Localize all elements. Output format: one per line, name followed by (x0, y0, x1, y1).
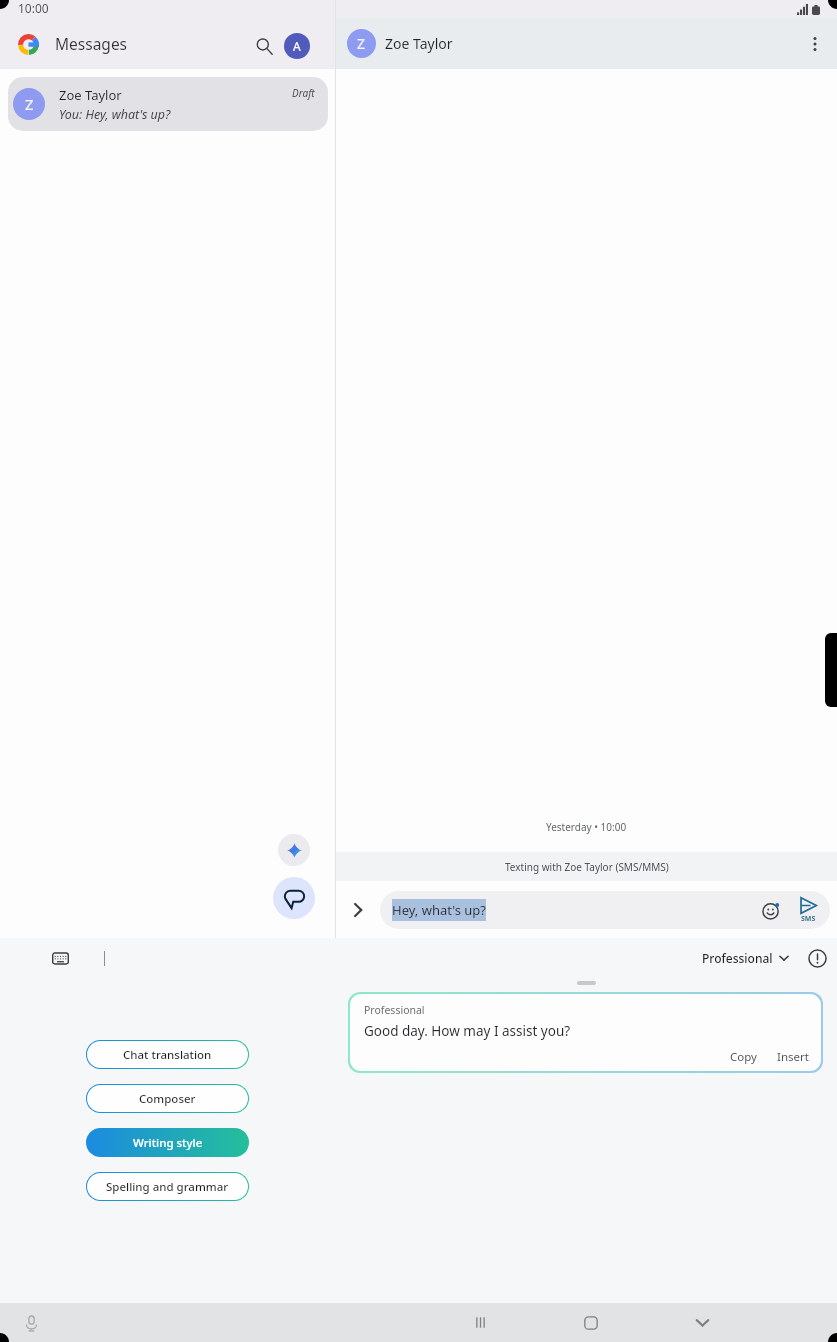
button[interactable]: Account (284, 33, 310, 59)
button[interactable]: Recent apps (460, 1303, 500, 1342)
staticText: Z (25, 94, 34, 114)
staticText: Writing style (133, 1135, 203, 1151)
button[interactable]: Copy (725, 1047, 762, 1067)
button[interactable]: Hey, what's up? (392, 899, 757, 921)
staticText: Zoe Taylor (59, 86, 122, 104)
button[interactable]: Send SMS (793, 892, 823, 928)
staticText: Yesterday • 10:00 (546, 820, 627, 834)
staticText: Professional (364, 1003, 425, 1017)
staticText: A (293, 38, 301, 54)
button[interactable]: Insert (772, 1047, 814, 1067)
staticText: SMS (801, 914, 816, 924)
staticText: Hey, what's up? (392, 901, 486, 919)
button[interactable]: Expand toolbar (344, 896, 372, 924)
staticText: Draft (292, 86, 315, 100)
staticText: 10:00 (18, 0, 49, 16)
button[interactable]: Voice input (20, 1312, 42, 1334)
button[interactable]: Composer (87, 1085, 248, 1112)
button[interactable]: Edge panel handle (825, 633, 837, 707)
staticText: Chat translation (123, 1047, 212, 1063)
button[interactable]: Z (8, 77, 328, 131)
button[interactable]: Emoji (757, 896, 785, 924)
staticText: Messages (55, 33, 128, 54)
button[interactable]: Spelling and grammar (87, 1173, 248, 1200)
staticText: Spelling and grammar (106, 1179, 229, 1195)
staticText: You: Hey, what's up? (59, 106, 171, 123)
staticText: Texting with Zoe Taylor (SMS/MMS) (505, 860, 669, 874)
button[interactable]: Back (682, 1303, 722, 1342)
button[interactable]: Gemini assistant (278, 834, 310, 866)
button[interactable]: Home (571, 1303, 611, 1342)
staticText: Z (357, 34, 366, 53)
button[interactable]: Start chat (273, 877, 315, 919)
staticText: Professional (702, 950, 773, 966)
button[interactable]: Search (246, 28, 282, 64)
button[interactable]: Chat translation (87, 1041, 248, 1068)
staticText: Composer (139, 1091, 196, 1107)
button[interactable]: Professional (350, 994, 821, 1071)
staticText: Good day. How may I assist you? (364, 1022, 571, 1040)
button[interactable]: More options (798, 27, 832, 61)
button[interactable]: Information (804, 945, 830, 971)
staticText: Zoe Taylor (385, 34, 453, 53)
button[interactable]: Writing style (86, 1128, 249, 1157)
button[interactable]: Keyboard (48, 946, 72, 970)
button[interactable]: Professional (698, 946, 790, 970)
